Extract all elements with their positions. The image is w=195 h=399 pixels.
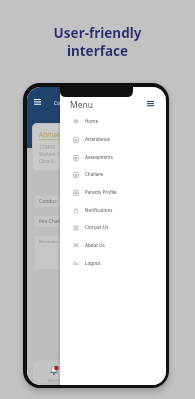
button[interactable]: Home <box>60 112 166 130</box>
button[interactable]: Fee Chall <box>34 215 150 228</box>
button[interactable]: About Us <box>60 236 166 254</box>
button[interactable]: Challans <box>60 165 166 183</box>
button[interactable]: Notifications <box>50 365 58 377</box>
staticText: Attendance <box>85 136 110 142</box>
button[interactable]: Logout <box>60 254 166 272</box>
staticText: Notifications <box>85 207 113 213</box>
staticText: Notifica <box>48 378 62 383</box>
staticText: Challans <box>85 171 104 177</box>
staticText: Contact Us <box>85 224 109 230</box>
button[interactable]: Reminder <box>34 235 150 270</box>
button[interactable]: Conduc <box>34 195 150 208</box>
staticText: Assessments <box>85 154 113 160</box>
staticText: User-friendly interface <box>0 24 195 60</box>
button[interactable] <box>32 359 162 384</box>
staticText: Wallace C <box>39 151 60 157</box>
staticText: Class 6 - <box>39 158 57 164</box>
staticText: Co <box>54 100 61 107</box>
button[interactable]: Parents Profile <box>60 183 166 201</box>
button[interactable]: Contact Us <box>60 218 166 236</box>
button[interactable]: Notifications <box>60 201 166 219</box>
staticText: About Us <box>85 242 105 248</box>
staticText: Menu <box>70 99 94 111</box>
button[interactable]: Attendance <box>60 130 166 148</box>
staticText: Home <box>85 118 98 124</box>
staticText: 173419 <box>39 144 55 150</box>
staticText: Reminder <box>39 239 59 245</box>
staticText: Ahmad R <box>39 130 67 139</box>
button[interactable]: Assessments <box>60 148 166 166</box>
staticText: Logout <box>85 260 101 266</box>
button[interactable]: Open navigation menu <box>34 99 41 105</box>
button[interactable]: Close navigation menu <box>147 101 154 106</box>
staticText: Conduc <box>39 198 57 205</box>
staticText: Fee Chall <box>39 218 61 225</box>
staticText: Parents Profile <box>85 189 117 195</box>
